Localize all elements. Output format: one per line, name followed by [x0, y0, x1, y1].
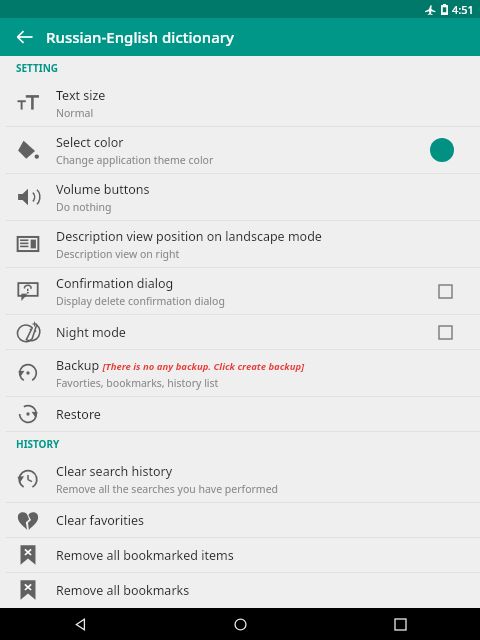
- staticText: Text size: [56, 87, 106, 104]
- button[interactable]: Night mode: [0, 315, 480, 349]
- staticText: Confirmation dialog: [56, 275, 174, 292]
- button[interactable]: Back: [0, 608, 160, 640]
- button[interactable]: Clear search history: [0, 456, 480, 502]
- staticText: Remove all bookmarks: [56, 582, 190, 599]
- staticText: Normal: [56, 106, 94, 120]
- button[interactable]: Remove all bookmarked items: [0, 538, 480, 572]
- button[interactable]: Recent apps: [320, 608, 480, 640]
- staticText: SETTING: [16, 61, 59, 75]
- staticText: Night mode: [56, 324, 126, 341]
- staticText: Description view on right: [56, 247, 180, 261]
- button[interactable]: Back: [10, 22, 40, 52]
- staticText: Do nothing: [56, 200, 112, 214]
- button[interactable]: Toggle: [432, 319, 458, 345]
- staticText: Remove all bookmarked items: [56, 547, 234, 564]
- staticText: Volume buttons: [56, 181, 150, 198]
- staticText: 4:51: [452, 2, 474, 17]
- button[interactable]: Toggle: [432, 278, 458, 304]
- staticText: Clear search history: [56, 463, 173, 480]
- button[interactable]: Description view position on landscape m…: [0, 221, 480, 267]
- staticText: Change application theme color: [56, 153, 214, 167]
- button[interactable]: Text size: [0, 80, 480, 126]
- staticText: Russian-English dictionary: [46, 27, 234, 47]
- button[interactable]: Remove all bookmarks: [0, 573, 480, 607]
- button[interactable]: Select color: [0, 127, 480, 173]
- staticText: Backup [There is no any backup. Click cr…: [56, 357, 305, 374]
- button[interactable]: Restore: [0, 397, 480, 431]
- staticText: Display delete confirmation dialog: [56, 294, 225, 308]
- button[interactable]: Volume buttons: [0, 174, 480, 220]
- staticText: Description view position on landscape m…: [56, 228, 322, 245]
- staticText: Remove all the searches you have perform…: [56, 482, 279, 496]
- button[interactable]: Backup [There is no any backup. Click cr…: [0, 350, 480, 396]
- staticText: Clear favorities: [56, 512, 144, 529]
- staticText: Select color: [56, 134, 124, 151]
- button[interactable]: Home: [160, 608, 320, 640]
- staticText: Restore: [56, 406, 101, 423]
- staticText: HISTORY: [16, 437, 60, 451]
- button[interactable]: Confirmation dialog: [0, 268, 480, 314]
- button[interactable]: Clear favorities: [0, 503, 480, 537]
- staticText: Favorties, bookmarks, history list: [56, 376, 219, 390]
